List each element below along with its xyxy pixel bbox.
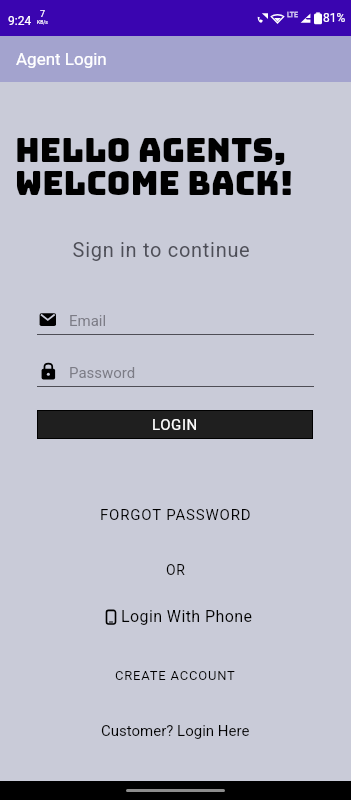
button[interactable]: Customer? Login Here — [0, 722, 351, 740]
button[interactable]: Email — [37, 305, 314, 335]
button[interactable]: LOGIN — [38, 411, 312, 438]
button[interactable]: OR — [0, 562, 351, 578]
staticText: Sign in to continue — [0, 238, 337, 261]
staticText: Email — [69, 312, 107, 330]
staticText: LTE — [287, 11, 298, 19]
staticText: KB/s — [37, 19, 48, 25]
staticText: LOGIN — [152, 416, 198, 434]
staticText: Login With Phone — [121, 607, 253, 626]
staticText: 9:24 — [8, 14, 32, 28]
staticText: Password — [69, 364, 136, 382]
staticText: 7 — [40, 9, 46, 20]
staticText: Agent Login — [16, 49, 107, 69]
staticText: OR — [166, 562, 186, 578]
other: Phone — [106, 610, 116, 624]
button[interactable]: Phone — [4, 607, 351, 626]
staticText: 81% — [323, 11, 346, 25]
button[interactable]: CREATE ACCOUNT — [0, 668, 351, 683]
staticText: FORGOT PASSWORD — [100, 506, 252, 524]
staticText: Customer? Login Here — [101, 722, 250, 740]
button[interactable]: FORGOT PASSWORD — [0, 506, 351, 524]
staticText: HELLO AGENTS, WELCOME BACK! — [15, 129, 294, 205]
staticText: CREATE ACCOUNT — [115, 668, 236, 683]
button[interactable]: Password — [37, 357, 314, 387]
other: Home — [126, 789, 225, 792]
